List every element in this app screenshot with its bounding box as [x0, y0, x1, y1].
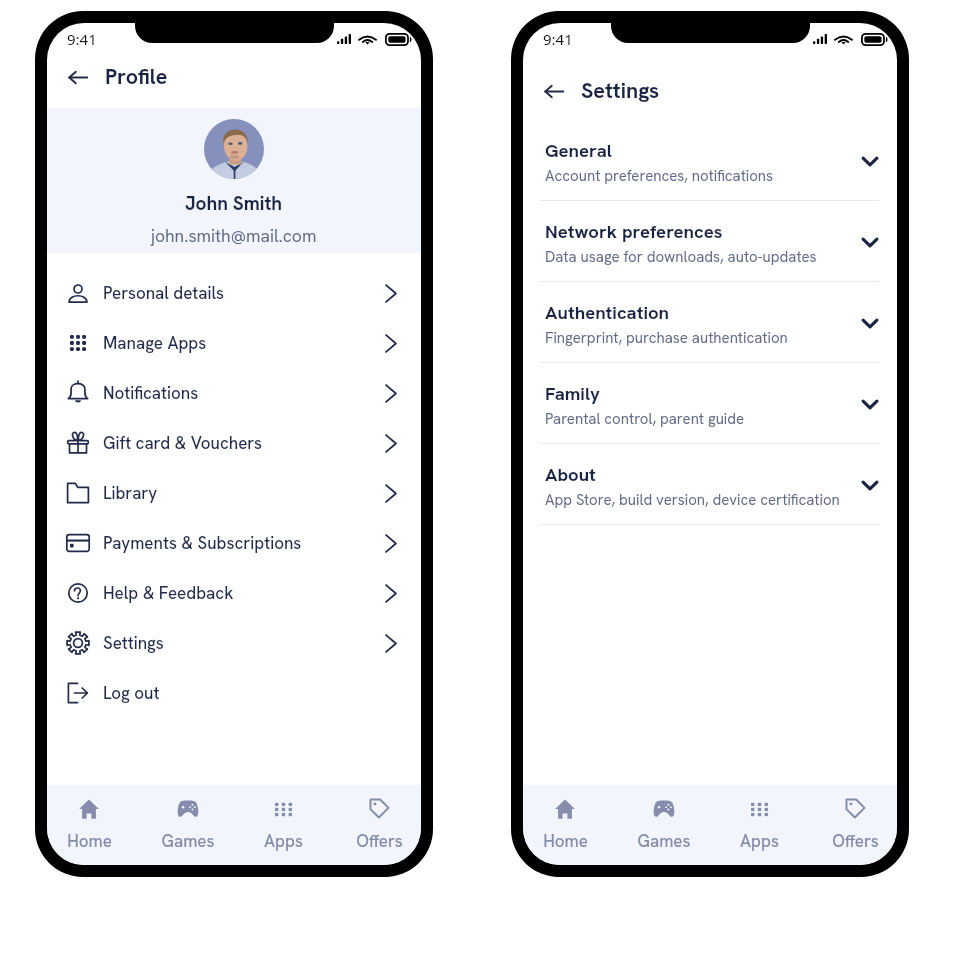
staticText: Network preferences [545, 219, 723, 243]
button[interactable]: Manage Apps [47, 318, 421, 368]
button[interactable]: Authentication [523, 306, 897, 362]
button[interactable]: Games [141, 785, 235, 865]
button[interactable]: Home [47, 785, 136, 865]
button[interactable]: Games [617, 785, 711, 865]
button[interactable]: Personal details [47, 268, 421, 318]
staticText: Offers [356, 830, 403, 852]
staticText: Fingerprint, purchase authentication [545, 328, 788, 348]
button[interactable]: Help & Feedback [47, 568, 421, 618]
staticText: Gift card & Vouchers [103, 432, 263, 454]
button[interactable]: About [523, 468, 897, 524]
staticText: Games [161, 830, 215, 852]
button[interactable]: Apps [712, 785, 806, 865]
staticText: Payments & Subscriptions [103, 532, 302, 554]
staticText: Help & Feedback [103, 582, 234, 604]
staticText: About [545, 462, 596, 486]
button[interactable]: Back [540, 77, 568, 105]
staticText: Library [103, 482, 158, 504]
staticText: Apps [740, 830, 779, 852]
staticText: General [545, 138, 612, 162]
staticText: 9:41 [543, 29, 573, 49]
staticText: Data usage for downloads, auto-updates [545, 247, 817, 267]
staticText: Family [545, 381, 600, 405]
staticText: Settings [581, 76, 660, 104]
staticText: Home [67, 830, 112, 852]
staticText: Settings [103, 632, 164, 654]
button[interactable]: Library [47, 468, 421, 518]
staticText: Offers [832, 830, 879, 852]
staticText: Authentication [545, 300, 669, 324]
button[interactable]: Log out [47, 668, 421, 718]
button[interactable]: Family [523, 387, 897, 443]
button[interactable]: Back [64, 63, 92, 91]
staticText: App Store, build version, device certifi… [545, 490, 840, 510]
staticText: Account preferences, notifications [545, 166, 774, 186]
staticText: Manage Apps [103, 332, 207, 354]
staticText: 9:41 [67, 29, 97, 49]
button[interactable]: Gift card & Vouchers [47, 418, 421, 468]
staticText: Games [637, 830, 691, 852]
staticText: Personal details [103, 282, 225, 304]
button[interactable]: Network preferences [523, 225, 897, 281]
staticText: Apps [264, 830, 303, 852]
button[interactable]: Notifications [47, 368, 421, 418]
staticText: John Smith [185, 191, 283, 216]
button[interactable]: Payments & Subscriptions [47, 518, 421, 568]
staticText: Home [543, 830, 588, 852]
button[interactable]: General [523, 144, 897, 200]
staticText: john.smith@mail.com [151, 224, 317, 247]
button[interactable]: Home [523, 785, 612, 865]
button[interactable]: Settings [47, 618, 421, 668]
button[interactable]: Offers [808, 785, 897, 865]
button[interactable]: Offers [332, 785, 421, 865]
button[interactable]: Apps [236, 785, 330, 865]
staticText: Log out [103, 682, 160, 704]
staticText: Notifications [103, 382, 199, 404]
staticText: Profile [105, 62, 168, 90]
staticText: Parental control, parent guide [545, 409, 745, 429]
